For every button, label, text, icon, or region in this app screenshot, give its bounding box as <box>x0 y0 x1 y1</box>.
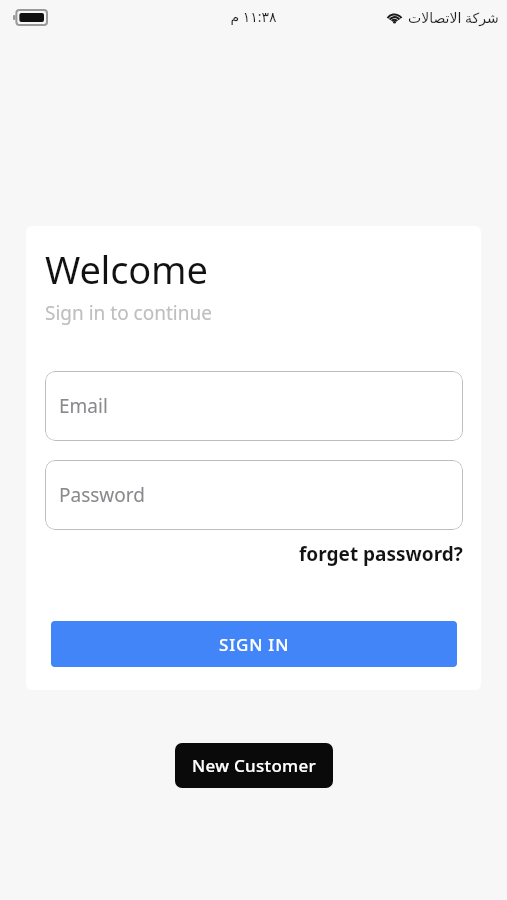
staticText: New Customer <box>192 754 317 777</box>
staticText: Email <box>59 393 108 419</box>
staticText: شركة الاتصالات <box>408 8 499 27</box>
button[interactable]: SIGN IN <box>51 621 457 667</box>
staticText: Sign in to continue <box>45 300 212 326</box>
button[interactable]: forget password? <box>45 536 463 572</box>
button[interactable]: Email <box>45 371 463 441</box>
other: Wi-Fi signal <box>386 11 403 24</box>
button[interactable]: New Customer <box>175 743 333 788</box>
other: Battery full <box>13 10 47 25</box>
button[interactable]: Password <box>45 460 463 530</box>
staticText: ١١:٣٨ م <box>230 7 277 26</box>
staticText: SIGN IN <box>219 633 290 656</box>
staticText: forget password? <box>299 541 463 567</box>
staticText: Password <box>59 482 145 508</box>
staticText: Welcome <box>45 243 208 295</box>
